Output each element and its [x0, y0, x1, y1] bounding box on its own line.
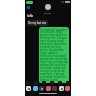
button[interactable]: App	[66, 81, 70, 85]
button[interactable]: Store	[65, 86, 70, 91]
button[interactable]: App	[42, 81, 46, 85]
button[interactable]: Back	[27, 6, 30, 9]
button[interactable]: Photos	[46, 86, 51, 91]
button[interactable]: Phone	[39, 86, 44, 91]
button[interactable]: App	[58, 81, 62, 85]
button[interactable]: App	[50, 81, 54, 85]
staticText: Sometimes I wonder if my assistant reall…	[40, 28, 68, 82]
button[interactable]: Camera	[26, 86, 31, 91]
button[interactable]: Messages	[33, 86, 38, 91]
button[interactable]: Music	[52, 86, 57, 91]
staticText: Jordan	[44, 11, 52, 14]
button[interactable]: Settings	[59, 86, 64, 91]
staticText: hello	[27, 14, 33, 18]
staticText: On my last one	[28, 21, 47, 25]
